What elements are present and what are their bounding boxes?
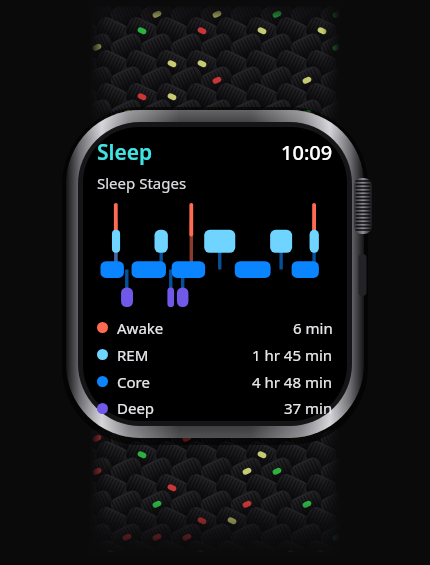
staticText: 6 min [293, 318, 333, 338]
staticText: Sleep [97, 138, 153, 167]
staticText: Sleep Stages [97, 173, 187, 193]
button[interactable]: Deep [83, 395, 347, 421]
button[interactable]: Awake [83, 314, 347, 341]
button[interactable]: Core [83, 368, 347, 395]
staticText: 37 min [284, 398, 333, 418]
staticText: 1 hr 45 min [252, 345, 333, 365]
staticText: 4 hr 48 min [252, 372, 333, 392]
button[interactable]: Sleep stages hypnogram chart [83, 199, 347, 311]
staticText: Deep [117, 398, 155, 418]
button[interactable]: REM [83, 341, 347, 368]
staticText: 10:09 [281, 139, 333, 166]
staticText: REM [117, 345, 149, 365]
staticText: Core [117, 372, 150, 392]
staticText: Awake [117, 318, 164, 338]
